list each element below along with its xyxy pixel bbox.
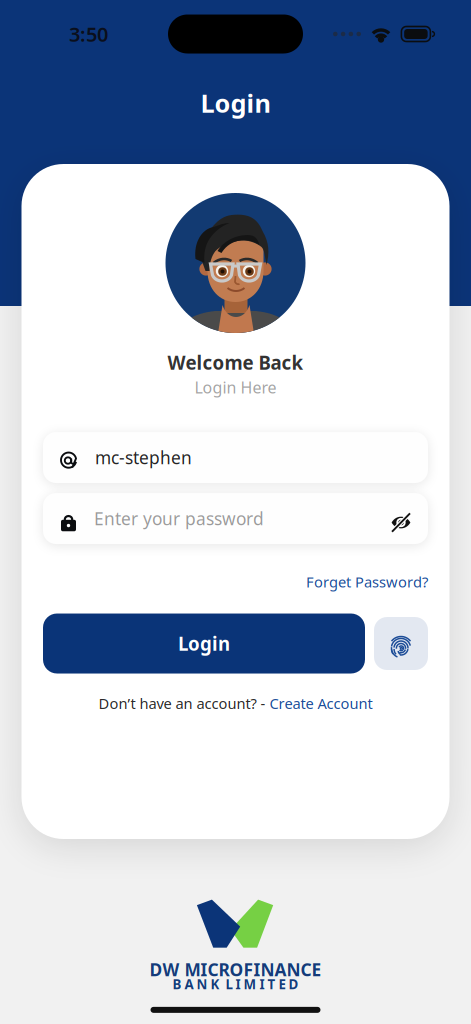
button[interactable]: Fingerprint login: [374, 617, 428, 670]
button[interactable]: Create Account: [269, 693, 372, 713]
staticText: DW MICROFINANCE: [149, 958, 321, 981]
staticText: Login Here: [194, 377, 276, 398]
staticText: Enter your password: [94, 507, 264, 530]
staticText: B A N K L I M I T E D: [172, 975, 298, 993]
staticText: Don’t have an account? -: [98, 693, 265, 713]
staticText: 3:50: [69, 21, 108, 47]
staticText: Welcome Back: [167, 350, 303, 375]
button[interactable]: Enter your password: [43, 493, 428, 544]
button[interactable]: Login: [43, 613, 365, 673]
button[interactable]: Forget Password?: [306, 572, 428, 591]
button[interactable]: mc-stephen: [43, 432, 428, 483]
staticText: mc-stephen: [95, 446, 192, 469]
staticText: Login: [178, 631, 230, 656]
staticText: Login: [200, 86, 270, 120]
staticText: Create Account: [269, 693, 372, 713]
staticText: Forget Password?: [306, 572, 428, 591]
